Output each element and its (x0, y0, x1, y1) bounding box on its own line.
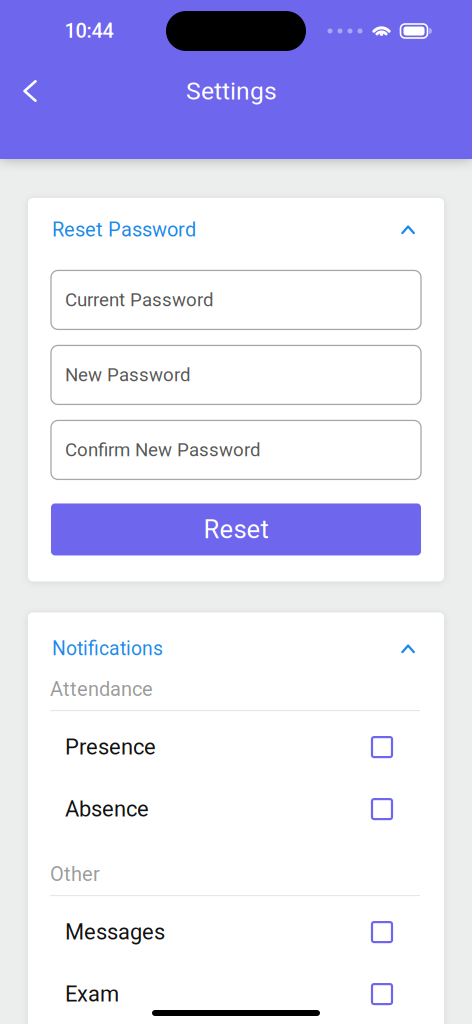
button[interactable]: Back (7, 69, 53, 113)
staticText: Current Password (65, 289, 214, 311)
button[interactable]: Reset Password (28, 198, 444, 270)
staticText: Attendance (50, 677, 153, 701)
staticText: Other (50, 862, 100, 886)
staticText: Reset (203, 514, 268, 544)
button[interactable]: Reset (51, 503, 421, 555)
staticText: Absence (65, 796, 149, 822)
button[interactable]: Current Password (51, 270, 421, 329)
staticText: 10:44 (64, 19, 113, 43)
staticText: New Password (65, 364, 191, 386)
button[interactable]: New Password (51, 345, 421, 404)
staticText: Settings (186, 76, 277, 105)
staticText: Messages (65, 919, 165, 945)
button[interactable]: Messages (50, 901, 420, 963)
staticText: Exam (65, 981, 119, 1007)
staticText: Presence (65, 734, 156, 760)
button[interactable]: Notifications (28, 612, 444, 660)
button[interactable]: Confirm New Password (51, 420, 421, 479)
staticText: Notifications (52, 637, 163, 660)
staticText: Reset Password (52, 218, 196, 241)
staticText: Confirm New Password (65, 439, 261, 461)
button[interactable]: Absence (50, 778, 420, 840)
button[interactable]: Presence (50, 716, 420, 778)
button[interactable]: Exam (50, 963, 420, 1024)
